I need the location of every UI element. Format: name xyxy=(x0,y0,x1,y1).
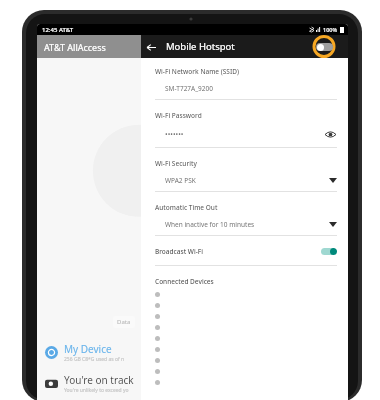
staticText: SM-T727A_9200 xyxy=(165,84,213,93)
staticText: Connected Devices xyxy=(155,277,214,286)
staticText: Wi-Fi Security xyxy=(155,159,197,168)
button[interactable]: You're on track xyxy=(45,373,141,394)
staticText: Mobile Hotspot xyxy=(166,40,235,53)
button[interactable]: Broadcast Wi-Fi xyxy=(155,247,337,256)
staticText: WPA2 PSK xyxy=(165,176,329,185)
staticText: Broadcast Wi-Fi xyxy=(155,247,321,256)
staticText: When inactive for 10 minutes xyxy=(165,220,329,229)
staticText: AT&T AllAccess xyxy=(44,41,106,53)
staticText: Automatic Time Out xyxy=(155,203,218,212)
staticText: You're on track xyxy=(64,373,134,387)
staticText: My Device xyxy=(64,342,112,356)
staticText: Wi-Fi Password xyxy=(155,111,202,120)
button[interactable]: WPA2 PSK xyxy=(155,176,337,185)
staticText: ••••••• xyxy=(165,130,324,140)
button[interactable]: Back xyxy=(141,37,161,57)
staticText: Wi-Fi Network Name (SSID) xyxy=(155,67,239,76)
button[interactable]: My Device xyxy=(45,342,141,363)
staticText: You're unlikely to exceed yo xyxy=(64,387,129,394)
staticText: Data xyxy=(117,318,131,326)
staticText: 12:45 AT&T xyxy=(42,26,74,34)
staticText: 256 GB C8*G used as of n xyxy=(64,356,125,363)
button[interactable]: Toggle Mobile Hotspot xyxy=(311,35,337,58)
button[interactable]: When inactive for 10 minutes xyxy=(155,220,337,229)
staticText: 100% xyxy=(323,26,338,33)
button[interactable]: Data xyxy=(117,318,131,326)
button[interactable]: Show password xyxy=(324,128,337,141)
